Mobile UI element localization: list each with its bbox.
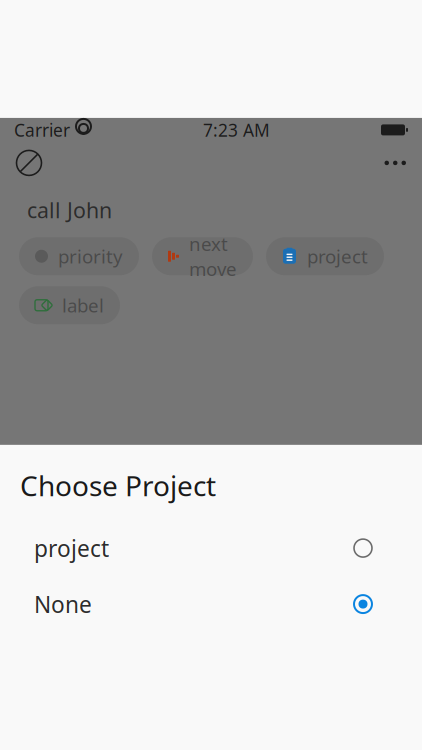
staticText: None xyxy=(34,589,92,619)
button[interactable]: label xyxy=(19,286,120,324)
staticText: Carrier xyxy=(14,118,70,141)
button[interactable]: More options xyxy=(368,149,422,177)
staticText: next move xyxy=(189,231,237,281)
button[interactable]: next move xyxy=(152,237,253,275)
staticText: Choose Project xyxy=(20,467,216,504)
staticText: label xyxy=(62,293,104,318)
staticText: 7:23 AM xyxy=(203,118,270,141)
button[interactable]: Cancel xyxy=(0,142,44,184)
button[interactable]: priority xyxy=(19,237,139,275)
staticText: call John xyxy=(27,196,112,224)
staticText: project xyxy=(34,533,109,563)
button[interactable]: project xyxy=(0,520,422,576)
button[interactable]: None xyxy=(0,576,422,632)
staticText: priority xyxy=(58,244,123,269)
staticText: project xyxy=(307,244,368,269)
button[interactable]: project xyxy=(266,237,384,275)
